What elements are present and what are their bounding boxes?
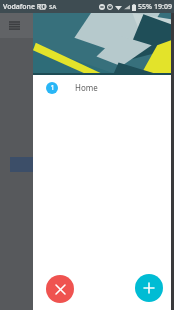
button[interactable]: Add xyxy=(135,274,163,302)
staticText: Home xyxy=(75,82,98,93)
button[interactable]: Open navigation drawer xyxy=(0,13,33,38)
staticText: Vodafone RO xyxy=(3,2,47,12)
staticText: SA xyxy=(49,3,57,11)
staticText: 1 xyxy=(50,83,55,93)
staticText: 19:09 xyxy=(154,2,172,12)
button[interactable]: 1 xyxy=(33,75,171,100)
button[interactable]: Close xyxy=(46,275,74,303)
staticText: 55% xyxy=(138,2,152,12)
